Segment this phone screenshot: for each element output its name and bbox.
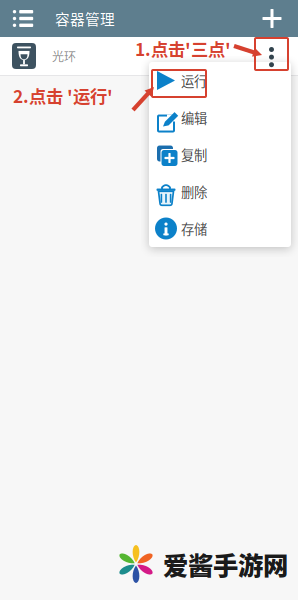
button[interactable]: 删除	[149, 173, 291, 210]
button[interactable]: Menu	[6, 0, 40, 37]
staticText: 爱酱手游网	[163, 546, 288, 582]
button[interactable]: 编辑	[149, 99, 291, 136]
staticText: 复制	[181, 145, 207, 164]
button[interactable]: Add	[254, 0, 290, 37]
staticText: 1.点击'三点'	[135, 36, 231, 61]
staticText: 编辑	[181, 108, 207, 127]
button[interactable]: 运行	[149, 62, 291, 99]
staticText: 2.点击 '运行'	[13, 83, 113, 108]
button[interactable]: 光环	[0, 37, 298, 75]
staticText: 光环	[52, 47, 76, 65]
staticText: 容器管理	[55, 8, 115, 29]
button[interactable]: 复制	[149, 136, 291, 173]
staticText: 存储	[181, 219, 207, 238]
staticText: 删除	[181, 182, 207, 201]
button[interactable]: 存储	[149, 210, 291, 247]
staticText: 运行	[181, 71, 207, 90]
